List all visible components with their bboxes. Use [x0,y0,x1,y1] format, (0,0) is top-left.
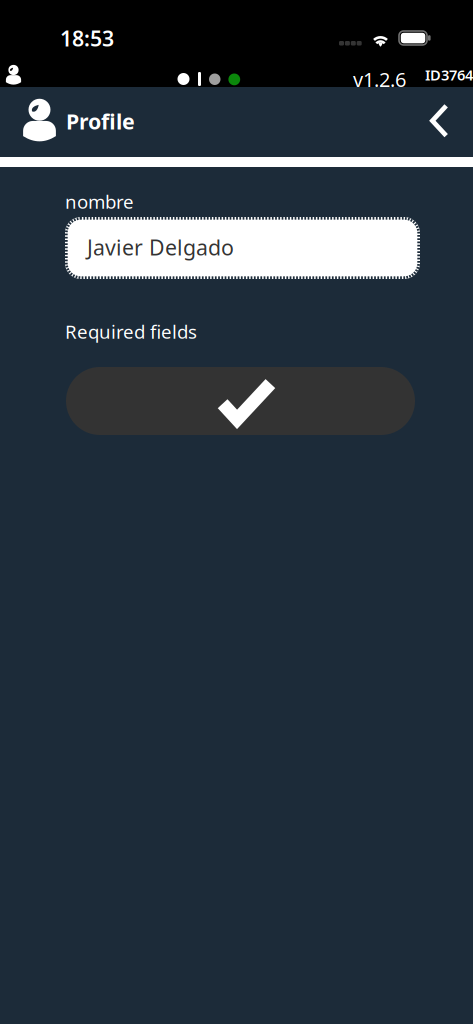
staticText: Javier Delgado [87,233,234,261]
staticText: v1.2.6 [353,66,406,93]
staticText: Profile [66,107,135,135]
staticText: nombre [65,189,134,214]
button[interactable]: Back [412,87,468,157]
button[interactable]: Confirm [66,367,415,435]
staticText: Required fields [65,319,197,344]
staticText: 18:53 [60,24,114,52]
staticText: ID3764 [425,65,473,84]
button[interactable]: Javier Delgado [65,217,420,279]
